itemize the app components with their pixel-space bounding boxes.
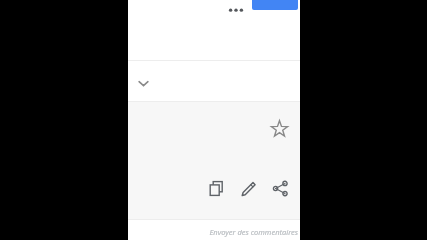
button[interactable]: Envoyer des commentaires xyxy=(209,227,298,237)
button[interactable]: Favourite xyxy=(266,115,292,141)
button[interactable]: Primary action xyxy=(252,0,298,10)
button[interactable]: More options xyxy=(222,0,250,18)
button[interactable]: Edit xyxy=(234,174,262,202)
button[interactable]: Expand xyxy=(131,71,155,95)
button[interactable]: Copy xyxy=(202,174,230,202)
button[interactable]: Share xyxy=(266,174,294,202)
